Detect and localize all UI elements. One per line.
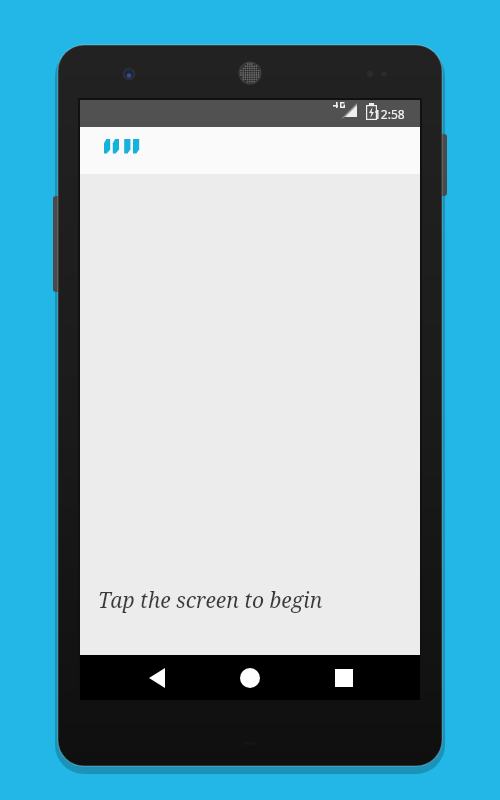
button[interactable]: Recent apps: [312, 655, 376, 700]
button[interactable]: Home: [218, 655, 282, 700]
staticText: 12:58: [374, 106, 405, 122]
button[interactable]: Tap the screen to begin: [80, 174, 420, 655]
button[interactable]: Quotes: [88, 129, 146, 174]
button[interactable]: Back: [125, 655, 189, 700]
staticText: Tap the screen to begin: [98, 586, 323, 615]
